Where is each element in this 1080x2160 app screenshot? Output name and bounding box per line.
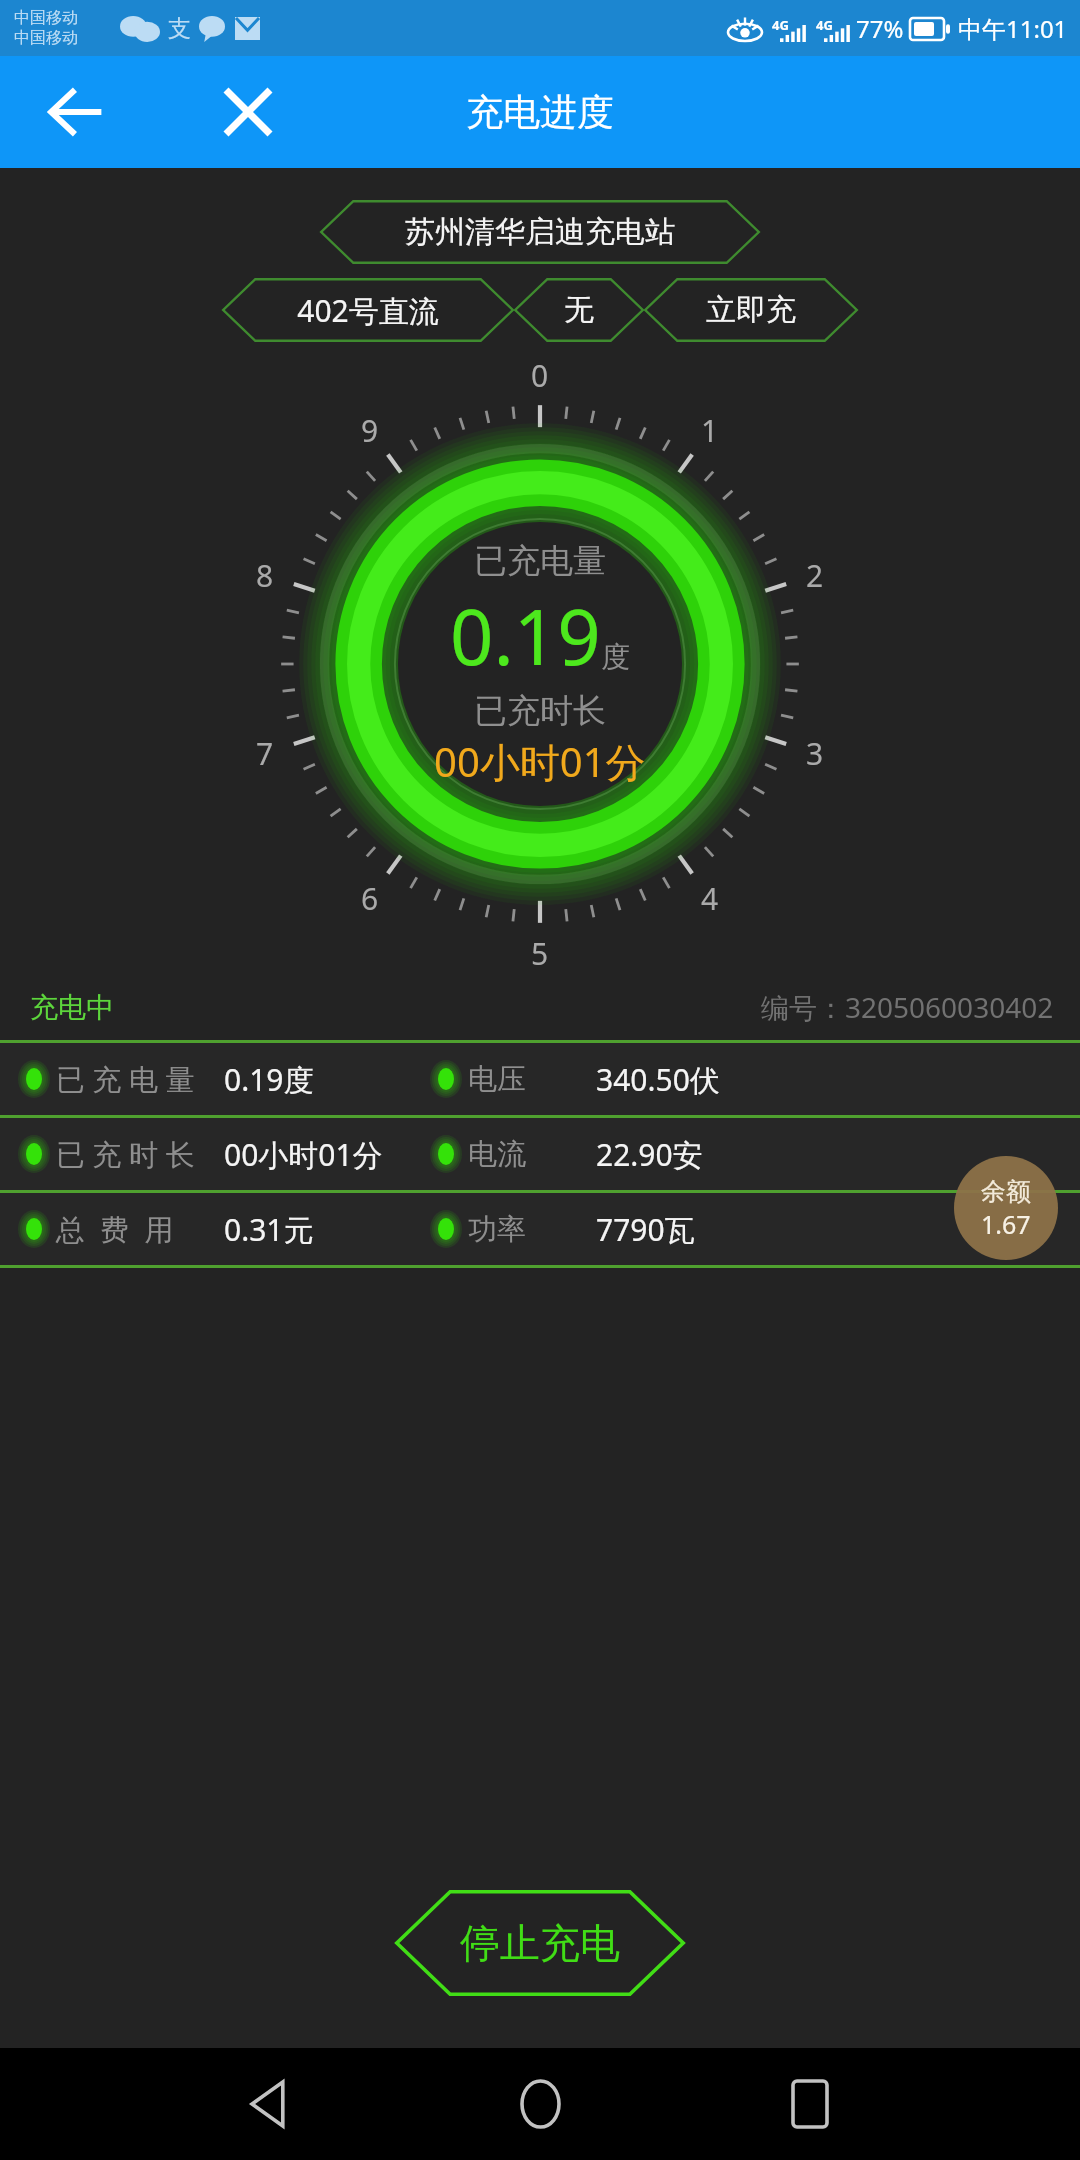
staticText: 无 (564, 291, 594, 329)
staticText: 77% (856, 12, 904, 45)
staticText: 立即充 (706, 291, 796, 329)
button[interactable]: 总 费 用 (0, 1193, 1080, 1265)
staticText: 0.19度 (224, 1059, 314, 1100)
staticText: 402号直流 (297, 290, 439, 331)
staticText: 3 (806, 733, 824, 774)
button[interactable]: Back (215, 2049, 325, 2159)
button[interactable]: Close (200, 64, 296, 160)
staticText: 4 (701, 878, 719, 919)
staticText: 中午11:01 (958, 12, 1068, 45)
button[interactable]: 已 充 电 量 (0, 1043, 1080, 1115)
staticText: 1 (701, 410, 719, 451)
staticText: 8 (256, 555, 274, 596)
button[interactable]: 停止充电 (395, 1890, 685, 1996)
staticText: 已充时长 (474, 690, 606, 732)
button[interactable]: 已 充 时 长 (0, 1118, 1080, 1190)
staticText: 0.19 (450, 584, 601, 688)
staticText: 1.67 (981, 1207, 1031, 1241)
button[interactable]: 余额 (954, 1156, 1058, 1260)
button[interactable]: Back (28, 64, 124, 160)
staticText: 7 (256, 733, 274, 774)
staticText: 00小时01分 (434, 734, 646, 789)
staticText: 2 (806, 555, 824, 596)
staticText: 0.31元 (224, 1209, 314, 1250)
staticText: 中国移动 (14, 28, 78, 48)
staticText: 总 费 用 (56, 1209, 174, 1249)
staticText: 7790瓦 (596, 1209, 695, 1250)
staticText: 340.50伏 (596, 1059, 720, 1100)
button[interactable]: 无 (514, 278, 644, 342)
staticText: 中国移动 (14, 8, 78, 28)
button[interactable]: Home (485, 2049, 595, 2159)
staticText: 停止充电 (460, 1918, 620, 1968)
staticText: 已 充 时 长 (56, 1134, 195, 1174)
button[interactable]: 苏州清华启迪充电站 (320, 200, 760, 264)
staticText: 已充电量 (474, 540, 606, 582)
staticText: 苏州清华启迪充电站 (405, 213, 675, 251)
staticText: 4G (772, 16, 789, 34)
staticText: 功率 (468, 1211, 526, 1248)
button[interactable]: 立即充 (644, 278, 858, 342)
button[interactable]: Recents (755, 2049, 865, 2159)
staticText: 9 (361, 410, 379, 451)
staticText: 22.90安 (596, 1134, 703, 1175)
staticText: 充电中 (30, 990, 114, 1025)
staticText: 00小时01分 (224, 1134, 383, 1175)
staticText: 电压 (468, 1061, 526, 1098)
staticText: 4G (816, 16, 833, 34)
staticText: 度 (601, 639, 630, 676)
staticText: 6 (361, 878, 379, 919)
staticText: 0 (531, 355, 549, 396)
button[interactable]: 402号直流 (222, 278, 514, 342)
staticText: 充电进度 (466, 89, 614, 136)
staticText: 已 充 电 量 (56, 1059, 195, 1099)
staticText: 支 (168, 14, 191, 43)
staticText: 编号：3205060030402 (761, 988, 1054, 1026)
staticText: 5 (531, 933, 549, 974)
staticText: 余额 (981, 1176, 1031, 1207)
staticText: 电流 (468, 1136, 526, 1173)
